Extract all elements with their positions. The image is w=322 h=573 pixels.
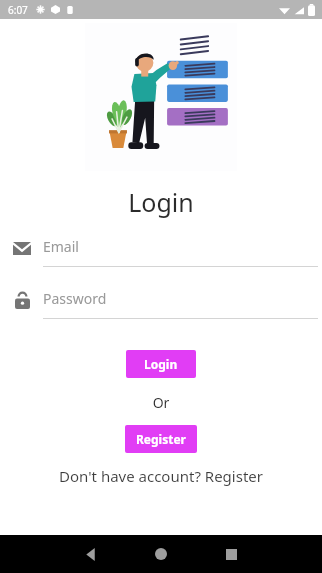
staticText: Login — [144, 356, 178, 372]
button[interactable]: Back — [56, 535, 126, 573]
button[interactable]: Recent apps — [196, 535, 266, 573]
button[interactable]: Login — [126, 350, 196, 378]
button[interactable]: Home — [126, 535, 196, 573]
staticText: Email — [43, 237, 79, 256]
other: Email — [13, 242, 31, 255]
button[interactable]: Register — [125, 425, 197, 453]
staticText: 6:07 — [8, 3, 28, 17]
button[interactable]: Email — [0, 237, 322, 267]
staticText: Register — [136, 431, 186, 447]
staticText: Password — [43, 289, 107, 308]
other: Password — [15, 292, 30, 309]
button[interactable]: Password — [0, 289, 322, 319]
button[interactable]: Don't have account? Register — [0, 466, 322, 486]
staticText: Or — [0, 393, 322, 412]
staticText: Login — [0, 185, 322, 219]
